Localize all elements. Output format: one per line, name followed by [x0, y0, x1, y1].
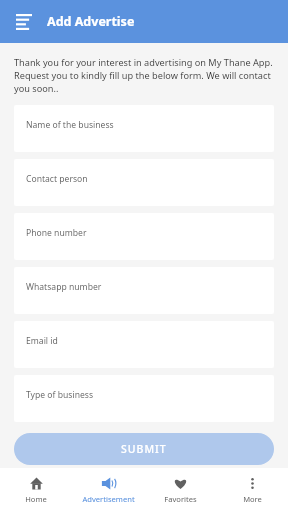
staticText: Favorites [164, 494, 197, 504]
button[interactable]: Name of the business [14, 105, 274, 152]
button[interactable]: Phone number [14, 213, 274, 260]
staticText: Add Advertise [47, 13, 135, 30]
staticText: More [243, 494, 262, 504]
button[interactable]: Contact person [14, 159, 274, 206]
button[interactable]: More [216, 468, 288, 512]
button[interactable]: Home [0, 468, 72, 512]
button[interactable]: Type of business [14, 375, 274, 422]
button[interactable]: SUBMIT [14, 433, 274, 465]
button[interactable]: Open navigation menu [9, 7, 39, 37]
staticText: Email id [26, 335, 58, 347]
staticText: Whatsapp number [26, 281, 102, 293]
button[interactable]: Email id [14, 321, 274, 368]
staticText: Advertisement [82, 494, 135, 504]
button[interactable]: Advertisement [72, 468, 144, 512]
button[interactable]: Favorites [144, 468, 216, 512]
staticText: SUBMIT [121, 442, 167, 456]
staticText: Contact person [26, 173, 88, 185]
staticText: Home [25, 494, 47, 504]
staticText: Type of business [26, 389, 94, 401]
button[interactable]: Whatsapp number [14, 267, 274, 314]
staticText: Thank you for your interest in advertisi… [14, 56, 274, 95]
staticText: Name of the business [26, 119, 114, 131]
staticText: Phone number [26, 227, 87, 239]
